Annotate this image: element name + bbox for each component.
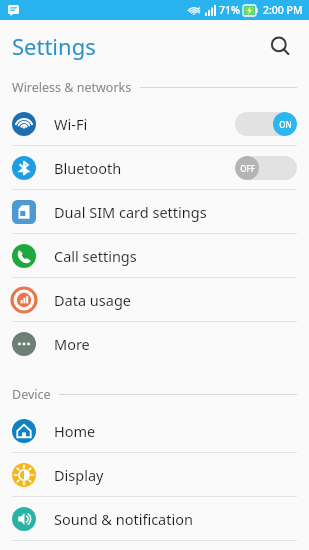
staticText: Display bbox=[54, 465, 104, 485]
button[interactable]: Home bbox=[0, 409, 309, 452]
staticText: ON bbox=[279, 119, 292, 130]
staticText: Bluetooth bbox=[54, 158, 122, 178]
button[interactable]: Wi-Fi bbox=[0, 102, 309, 145]
button[interactable]: Dual SIM card settings bbox=[0, 190, 309, 233]
staticText: Device bbox=[12, 386, 51, 403]
staticText: Home bbox=[54, 421, 96, 441]
staticText: 71% bbox=[219, 3, 240, 17]
button[interactable]: Sound & notification bbox=[0, 497, 309, 540]
staticText: Wi-Fi bbox=[54, 114, 88, 134]
staticText: Sound & notification bbox=[54, 509, 193, 529]
staticText: More bbox=[54, 334, 90, 354]
button[interactable]: Display bbox=[0, 453, 309, 496]
staticText: 2:00 PM bbox=[263, 3, 303, 17]
button[interactable]: Data usage bbox=[0, 278, 309, 321]
button[interactable]: Bluetooth bbox=[0, 146, 309, 189]
staticText: Data usage bbox=[54, 290, 131, 310]
staticText: Dual SIM card settings bbox=[54, 202, 207, 222]
button[interactable]: Search bbox=[259, 25, 301, 67]
button[interactable]: Turn off bbox=[235, 112, 297, 136]
staticText: Settings bbox=[12, 31, 96, 61]
staticText: Call settings bbox=[54, 246, 137, 266]
staticText: Wireless & networks bbox=[12, 79, 132, 96]
button[interactable]: Turn on bbox=[235, 156, 297, 180]
button[interactable]: Call settings bbox=[0, 234, 309, 277]
staticText: OFF bbox=[240, 163, 255, 174]
button[interactable]: More bbox=[0, 322, 309, 365]
